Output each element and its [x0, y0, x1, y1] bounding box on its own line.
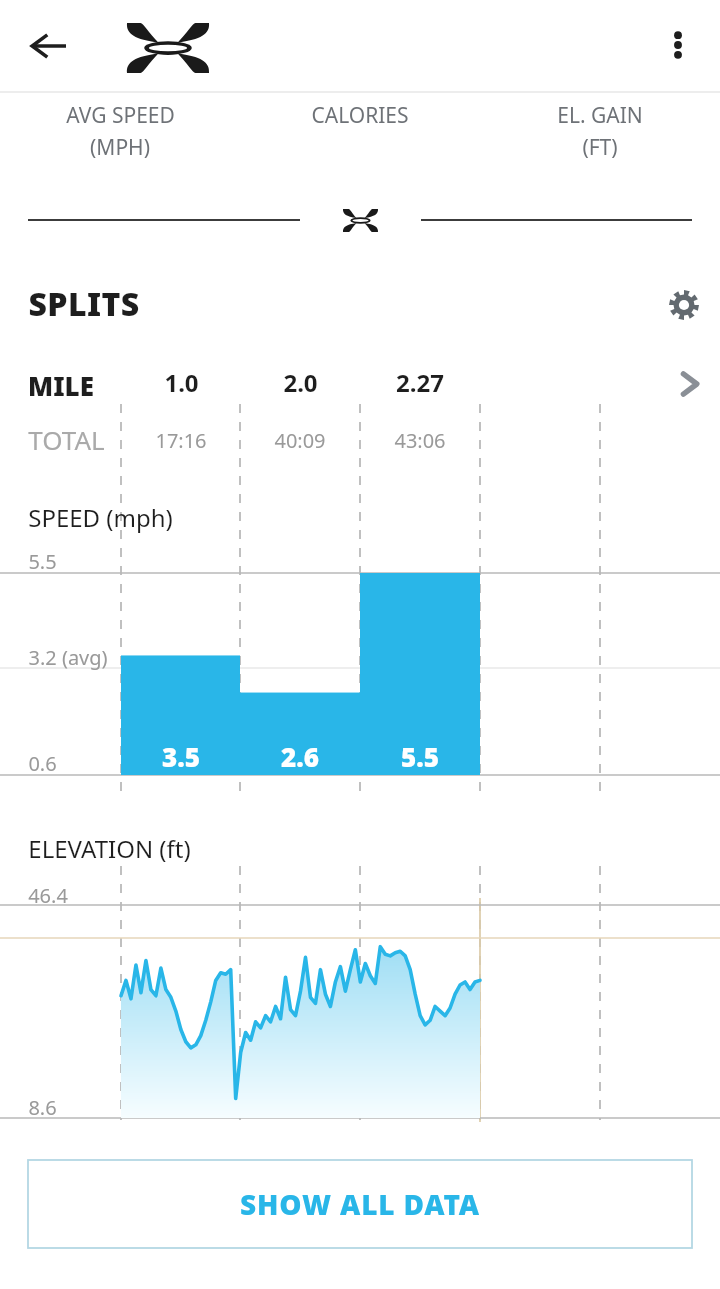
staticText: ELEVATION (ft)	[28, 832, 191, 865]
staticText: AVG SPEED	[66, 101, 175, 130]
staticText: (FT)	[582, 133, 618, 162]
staticText: SPLITS	[28, 282, 140, 326]
staticText: 40:09	[274, 427, 326, 454]
staticText: MILE	[28, 368, 94, 403]
staticText: EL. GAIN	[557, 101, 643, 130]
button[interactable]: Splits settings	[655, 278, 713, 332]
staticText: 5.5	[28, 548, 57, 575]
staticText: TOTAL	[28, 422, 105, 457]
staticText: 17:16	[155, 427, 207, 454]
staticText: SPEED (mph)	[28, 501, 173, 534]
staticText: 5.5	[401, 739, 439, 774]
staticText: 2.0	[283, 366, 318, 399]
staticText: 2.27	[396, 366, 444, 399]
staticText: 2.6	[281, 739, 319, 774]
staticText: 43:06	[394, 427, 446, 454]
staticText: 46.4	[28, 882, 68, 909]
staticText: SHOW ALL DATA	[240, 1185, 480, 1223]
button[interactable]: Back	[16, 14, 80, 78]
staticText: 3.5	[162, 739, 200, 774]
staticText: 8.6	[28, 1094, 57, 1121]
button[interactable]: More options	[647, 14, 709, 76]
button[interactable]: Next splits	[661, 361, 717, 407]
staticText: 3.2 (avg)	[28, 644, 108, 671]
staticText: CALORIES	[311, 101, 409, 130]
staticText: (MPH)	[90, 133, 150, 162]
button[interactable]: SHOW ALL DATA	[28, 1160, 692, 1248]
staticText: 1.0	[164, 366, 199, 399]
staticText: 0.6	[28, 750, 57, 777]
